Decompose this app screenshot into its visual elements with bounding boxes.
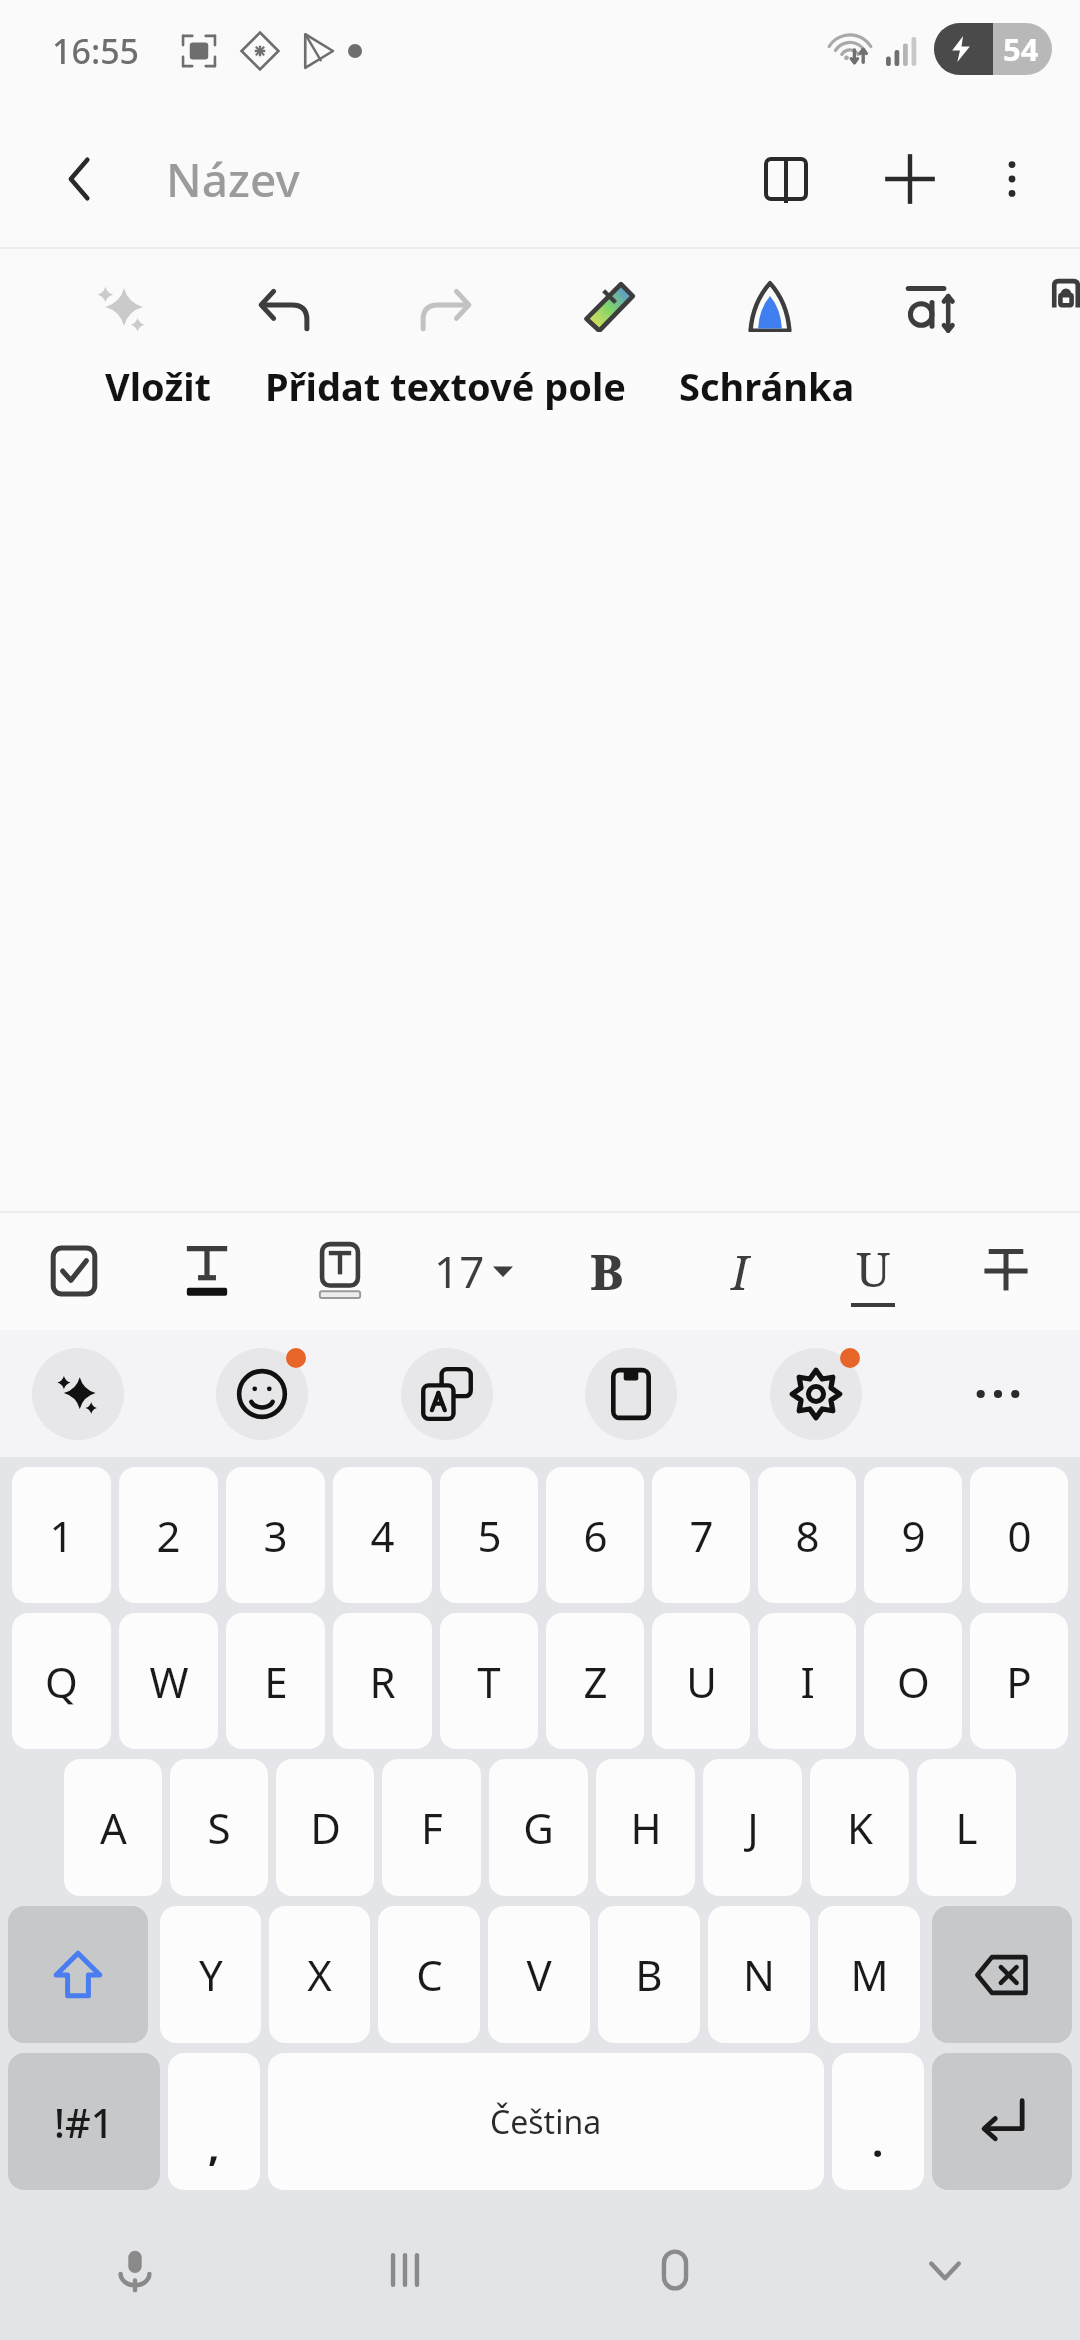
button[interactable]: T (440, 1613, 538, 1749)
button[interactable]: I (758, 1613, 856, 1749)
button[interactable]: L (917, 1759, 1016, 1896)
staticText: X (307, 1946, 332, 2003)
button[interactable]: Keyboard tool (214, 1346, 310, 1442)
button[interactable]: Voice input (0, 2200, 270, 2340)
staticText: Schránka (679, 360, 855, 412)
button[interactable]: X (269, 1906, 370, 2043)
staticText: O (897, 1653, 930, 1710)
staticText: , (208, 2118, 220, 2172)
button[interactable]: Přidat textové pole (265, 332, 627, 440)
button[interactable]: M (818, 1906, 920, 2043)
staticText: 17 (434, 1241, 485, 1301)
button[interactable]: 9 (864, 1467, 962, 1603)
button[interactable]: 1 (12, 1467, 111, 1603)
button[interactable]: Recents (270, 2200, 540, 2340)
button[interactable]: V (488, 1906, 590, 2043)
staticText: L (955, 1799, 978, 1856)
button[interactable]: More options (974, 141, 1050, 217)
button[interactable]: P (970, 1613, 1068, 1749)
button[interactable]: Hide keyboard (810, 2200, 1080, 2340)
button[interactable]: 8 (758, 1467, 856, 1603)
button[interactable]: C (378, 1906, 480, 2043)
button[interactable]: A (64, 1759, 162, 1896)
button[interactable]: Enter (932, 2053, 1072, 2190)
button[interactable]: D (276, 1759, 374, 1896)
button[interactable]: Y (160, 1906, 261, 2043)
button[interactable]: Back (46, 145, 114, 213)
staticText: D (310, 1799, 341, 1856)
staticText: S (207, 1799, 231, 1856)
button[interactable]: Keyboard tool (30, 1346, 126, 1442)
button[interactable]: Comma (168, 2053, 260, 2190)
staticText: U (856, 1236, 891, 1301)
staticText: B (590, 1239, 624, 1304)
button[interactable]: Format (26, 1223, 122, 1319)
button[interactable]: J (703, 1759, 802, 1896)
staticText: Vložit (105, 360, 211, 412)
staticText: 16:55 (52, 28, 140, 74)
button[interactable]: Keyboard tool (583, 1346, 679, 1442)
button[interactable]: 5 (440, 1467, 538, 1603)
button[interactable]: Format (692, 1223, 788, 1319)
button[interactable]: B (598, 1906, 700, 2043)
button[interactable]: Reading view (748, 141, 824, 217)
staticText: 8 (795, 1507, 820, 1564)
staticText: . (872, 2114, 884, 2168)
staticText: Z (583, 1653, 608, 1710)
button[interactable]: F (382, 1759, 481, 1896)
button[interactable]: Tool (404, 266, 488, 350)
button[interactable]: Home (540, 2200, 810, 2340)
button[interactable]: R (333, 1613, 432, 1749)
staticText: G (523, 1799, 554, 1856)
button[interactable]: H (596, 1759, 695, 1896)
staticText: 6 (583, 1507, 608, 1564)
button[interactable]: K (810, 1759, 909, 1896)
button[interactable]: 4 (333, 1467, 432, 1603)
button[interactable]: Tool (728, 266, 812, 350)
staticText: Y (199, 1946, 223, 2003)
button[interactable]: Tool (566, 266, 650, 350)
staticText: W (149, 1653, 189, 1710)
button[interactable]: Schránka (679, 332, 855, 440)
staticText: 5 (477, 1507, 502, 1564)
button[interactable]: N (708, 1906, 810, 2043)
staticText: Q (45, 1653, 78, 1710)
button[interactable]: U (652, 1613, 750, 1749)
staticText: H (630, 1799, 662, 1856)
button[interactable]: Format (425, 1223, 521, 1319)
button[interactable]: Backspace (932, 1906, 1072, 2043)
button[interactable]: Tool (890, 266, 974, 350)
button[interactable]: Tool (1052, 266, 1080, 350)
button[interactable]: Format (159, 1223, 255, 1319)
button[interactable]: Symbols (8, 2053, 160, 2190)
button[interactable]: S (170, 1759, 268, 1896)
button[interactable]: W (119, 1613, 218, 1749)
button[interactable]: Keyboard tool (768, 1346, 864, 1442)
button[interactable]: Shift (8, 1906, 148, 2043)
staticText: 7 (689, 1507, 714, 1564)
button[interactable]: E (226, 1613, 325, 1749)
button[interactable]: Tool (80, 266, 164, 350)
button[interactable]: 0 (970, 1467, 1068, 1603)
button[interactable]: 7 (652, 1467, 750, 1603)
button[interactable]: O (864, 1613, 962, 1749)
button[interactable]: Format (292, 1223, 388, 1319)
button[interactable]: Add (872, 141, 948, 217)
button[interactable]: Vložit (105, 332, 211, 440)
button[interactable]: Format (958, 1223, 1054, 1319)
button[interactable]: 6 (546, 1467, 644, 1603)
button[interactable]: Space (268, 2053, 824, 2190)
button[interactable]: 2 (119, 1467, 218, 1603)
button[interactable]: More (952, 1348, 1044, 1440)
staticText: J (747, 1799, 759, 1856)
button[interactable]: Period (832, 2053, 924, 2190)
button[interactable]: Format (559, 1223, 655, 1319)
button[interactable]: 3 (226, 1467, 325, 1603)
button[interactable]: Z (546, 1613, 644, 1749)
button[interactable]: Keyboard tool (399, 1346, 495, 1442)
staticText: 2 (156, 1507, 181, 1564)
button[interactable]: G (489, 1759, 588, 1896)
button[interactable]: Q (12, 1613, 111, 1749)
button[interactable]: Tool (242, 266, 326, 350)
button[interactable]: Format (825, 1223, 921, 1319)
